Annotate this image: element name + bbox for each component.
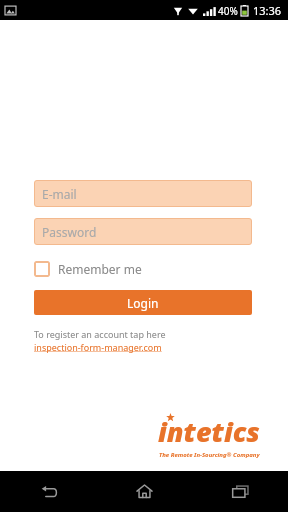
button[interactable]: Password: [34, 218, 252, 245]
button[interactable]: Login: [34, 290, 252, 315]
staticText: To register an account tap here: [34, 328, 166, 340]
staticText: intetics: [158, 413, 260, 450]
button[interactable]: inspection-form-manager.com: [34, 341, 162, 353]
staticText: Login: [127, 295, 159, 311]
button[interactable]: Remember me: [34, 259, 142, 279]
button[interactable]: E-mail: [34, 180, 252, 207]
staticText: The Remote In-Sourcing® Company: [159, 451, 260, 459]
staticText: E-mail: [42, 186, 77, 202]
button[interactable]: Back: [0, 471, 96, 512]
staticText: Password: [42, 224, 97, 240]
staticText: 40%: [218, 4, 238, 18]
staticText: 13:36: [253, 3, 282, 18]
button[interactable]: Recent apps: [192, 471, 288, 512]
button[interactable]: Home: [96, 471, 192, 512]
staticText: Remember me: [58, 261, 142, 277]
staticText: inspection-form-manager.com: [34, 341, 162, 353]
